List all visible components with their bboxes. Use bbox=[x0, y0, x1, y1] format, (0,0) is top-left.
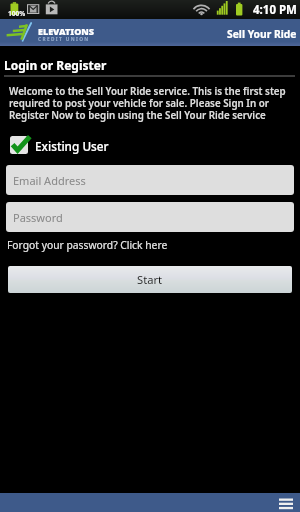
button[interactable]: Email Address bbox=[6, 165, 294, 195]
staticText: CREDIT UNION bbox=[38, 36, 90, 43]
button[interactable]: Password bbox=[6, 202, 294, 232]
button[interactable]: Existing User bbox=[10, 135, 109, 154]
staticText: Welcome to the Sell Your Ride service. T… bbox=[9, 85, 296, 122]
staticText: 100% bbox=[8, 9, 26, 18]
button[interactable]: Forgot your password? Click here bbox=[7, 238, 168, 252]
staticText: Start bbox=[137, 272, 163, 287]
staticText: Existing User bbox=[35, 138, 109, 154]
button[interactable]: Start bbox=[8, 266, 292, 293]
staticText: 4:10 PM bbox=[253, 2, 297, 18]
staticText: Email Address bbox=[13, 173, 86, 188]
staticText: Sell Your Ride bbox=[227, 27, 297, 41]
staticText: Login or Register bbox=[4, 57, 107, 73]
staticText: Password bbox=[13, 210, 63, 225]
button[interactable]: Menu bbox=[279, 497, 293, 509]
staticText: ELEVATIONS bbox=[38, 25, 95, 37]
